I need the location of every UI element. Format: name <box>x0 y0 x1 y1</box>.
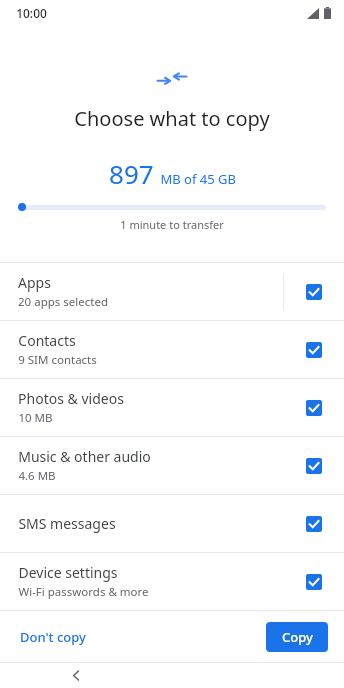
button[interactable]: Photos & videos <box>0 379 344 436</box>
button[interactable]: Music & other audio <box>0 437 344 494</box>
button[interactable]: Toggle SMS messages <box>302 512 326 536</box>
button[interactable]: Apps <box>0 263 344 320</box>
button[interactable]: Toggle Photos & videos <box>302 396 326 420</box>
staticText: Music & other audio <box>18 447 151 466</box>
staticText: 10 MB <box>18 410 53 426</box>
staticText: 1 minute to transfer <box>120 217 224 232</box>
staticText: Choose what to copy <box>74 105 270 132</box>
staticText: 4.6 MB <box>18 468 56 484</box>
staticText: Apps <box>18 273 51 292</box>
button[interactable]: Toggle Device settings <box>302 570 326 594</box>
staticText: 10:00 <box>16 5 47 21</box>
staticText: 9 SIM contacts <box>18 352 97 368</box>
button[interactable]: Toggle Music & other audio <box>302 454 326 478</box>
staticText: Wi-Fi passwords & more <box>18 584 149 600</box>
button[interactable]: Device settings <box>0 553 344 610</box>
button[interactable]: SMS messages <box>0 495 344 552</box>
staticText: SMS messages <box>18 514 116 533</box>
staticText: Copy <box>282 628 313 646</box>
button[interactable]: Toggle Apps <box>302 280 326 304</box>
staticText: 897 MB of 45 GB <box>109 156 236 191</box>
button[interactable]: Toggle Contacts <box>302 338 326 362</box>
button[interactable]: Copy <box>266 622 328 652</box>
staticText: Don't copy <box>20 628 86 646</box>
staticText: Photos & videos <box>18 389 124 408</box>
button[interactable]: Contacts <box>0 321 344 378</box>
staticText: Device settings <box>18 563 118 582</box>
button[interactable]: Don't copy <box>10 621 96 653</box>
button[interactable]: Back <box>60 663 92 688</box>
staticText: 20 apps selected <box>18 294 108 310</box>
staticText: Contacts <box>18 331 76 350</box>
